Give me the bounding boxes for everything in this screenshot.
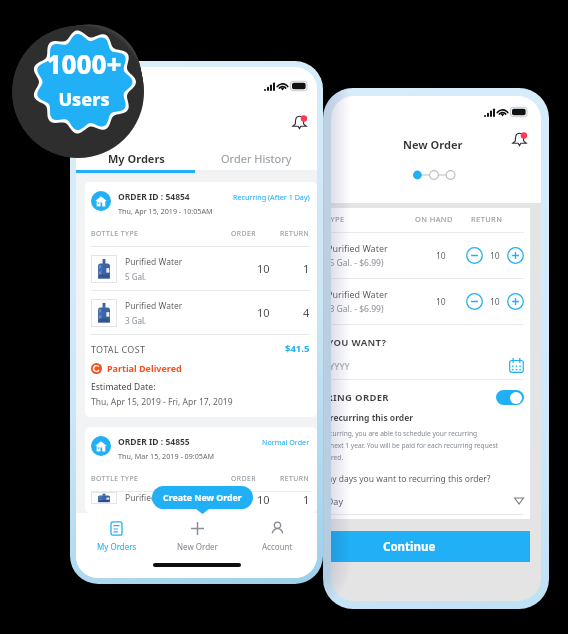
button[interactable]: Order History bbox=[196, 147, 317, 170]
button[interactable]: Increase quantity bbox=[507, 293, 524, 310]
button[interactable]: Decrease quantity bbox=[466, 293, 483, 310]
staticText: My Orders bbox=[108, 151, 165, 166]
staticText: Want to recurring this order bbox=[331, 412, 414, 424]
staticText: 3 Gal. bbox=[125, 315, 147, 326]
staticText: Normal Order bbox=[262, 437, 310, 447]
staticText: Thu, Apr 15, 2019 - 10:05AM bbox=[118, 206, 213, 216]
staticText: 10 bbox=[257, 261, 270, 276]
staticText: 1 bbox=[303, 492, 310, 504]
staticText: (5 Gal. - $6.99) bbox=[331, 257, 384, 269]
button[interactable]: Recurring order toggle bbox=[496, 390, 524, 405]
staticText: 1 bbox=[303, 261, 310, 276]
staticText: RECURRING ORDER bbox=[331, 391, 389, 404]
staticText: By doing recurring, you are able to sche… bbox=[331, 429, 478, 438]
staticText: Recurring (After 1 Day) bbox=[233, 192, 310, 202]
button[interactable]: Decrease quantity bbox=[466, 247, 483, 264]
staticText: Purified Water bbox=[125, 256, 183, 268]
staticText: How many days you want to recurring this… bbox=[331, 473, 491, 485]
staticText: 5 Gal. bbox=[125, 271, 147, 282]
staticText: Purified Water bbox=[125, 492, 183, 504]
staticText: Purified Water bbox=[331, 288, 388, 300]
staticText: $41.5 bbox=[285, 342, 310, 355]
button[interactable]: Pick a date bbox=[509, 358, 524, 373]
staticText: 1000+ bbox=[34, 46, 134, 81]
staticText: RETURN bbox=[471, 214, 503, 224]
staticText: Purified Water bbox=[125, 300, 183, 312]
staticText: ON HAND bbox=[415, 214, 453, 224]
staticText: BOTTLE TYPE bbox=[91, 474, 139, 483]
staticText: ORDER bbox=[231, 229, 257, 238]
staticText: TOTAL COST bbox=[91, 343, 146, 355]
staticText: Every 1 Day bbox=[331, 495, 343, 507]
staticText: BOTTLE TYPE bbox=[91, 229, 139, 238]
staticText: 10 bbox=[490, 250, 500, 262]
button[interactable]: Continue bbox=[331, 531, 530, 562]
staticText: ORDER bbox=[231, 474, 257, 483]
staticText: Partial Delivered bbox=[107, 362, 182, 374]
staticText: My Orders bbox=[97, 541, 137, 552]
staticText: ORDER ID : 54854 bbox=[118, 191, 190, 203]
staticText: 10 bbox=[436, 250, 446, 262]
staticText: New Order bbox=[403, 137, 463, 152]
staticText: 10 bbox=[257, 492, 270, 504]
staticText: New Order bbox=[177, 541, 218, 552]
staticText: ORDER ID : 54855 bbox=[118, 436, 190, 448]
staticText: Create New Order bbox=[163, 492, 242, 504]
button[interactable]: Notifications bbox=[511, 131, 528, 148]
staticText: Estimated Date: bbox=[91, 381, 156, 393]
button[interactable]: New Order bbox=[157, 521, 237, 552]
staticText: Thu, Mar 15, 2019 - 09:05AM bbox=[118, 451, 215, 461]
staticText: WHEN YOU WANT? bbox=[331, 336, 387, 349]
button[interactable]: Notifications bbox=[291, 114, 308, 131]
staticText: BOTTLE TYPE bbox=[331, 214, 345, 224]
staticText: (3 Gal. - $6.99) bbox=[331, 303, 384, 315]
staticText: Order History bbox=[221, 151, 292, 166]
staticText: Thu, Apr 15, 2019 - Fri, Apr 17, 2019 bbox=[91, 396, 233, 408]
staticText: MM-DD-YYYY bbox=[331, 360, 350, 372]
button[interactable]: My Orders bbox=[76, 147, 196, 170]
staticText: request for next 1 year. You will be pai… bbox=[331, 441, 498, 450]
staticText: Users bbox=[34, 87, 134, 112]
staticText: RETURN bbox=[280, 229, 310, 238]
button[interactable]: Increase quantity bbox=[507, 247, 524, 264]
button[interactable]: My Orders bbox=[76, 521, 157, 552]
button[interactable]: Create New Order bbox=[152, 486, 253, 509]
staticText: 10 bbox=[257, 305, 270, 320]
staticText: Account bbox=[262, 541, 293, 552]
staticText: 10 bbox=[436, 296, 446, 308]
staticText: 4 bbox=[303, 305, 310, 320]
button[interactable]: Account bbox=[237, 521, 317, 552]
staticText: RETURN bbox=[280, 474, 310, 483]
staticText: Continue bbox=[383, 539, 436, 555]
staticText: Purified Water bbox=[331, 242, 388, 254]
staticText: when delivered. bbox=[331, 453, 344, 462]
staticText: 10 bbox=[490, 296, 500, 308]
